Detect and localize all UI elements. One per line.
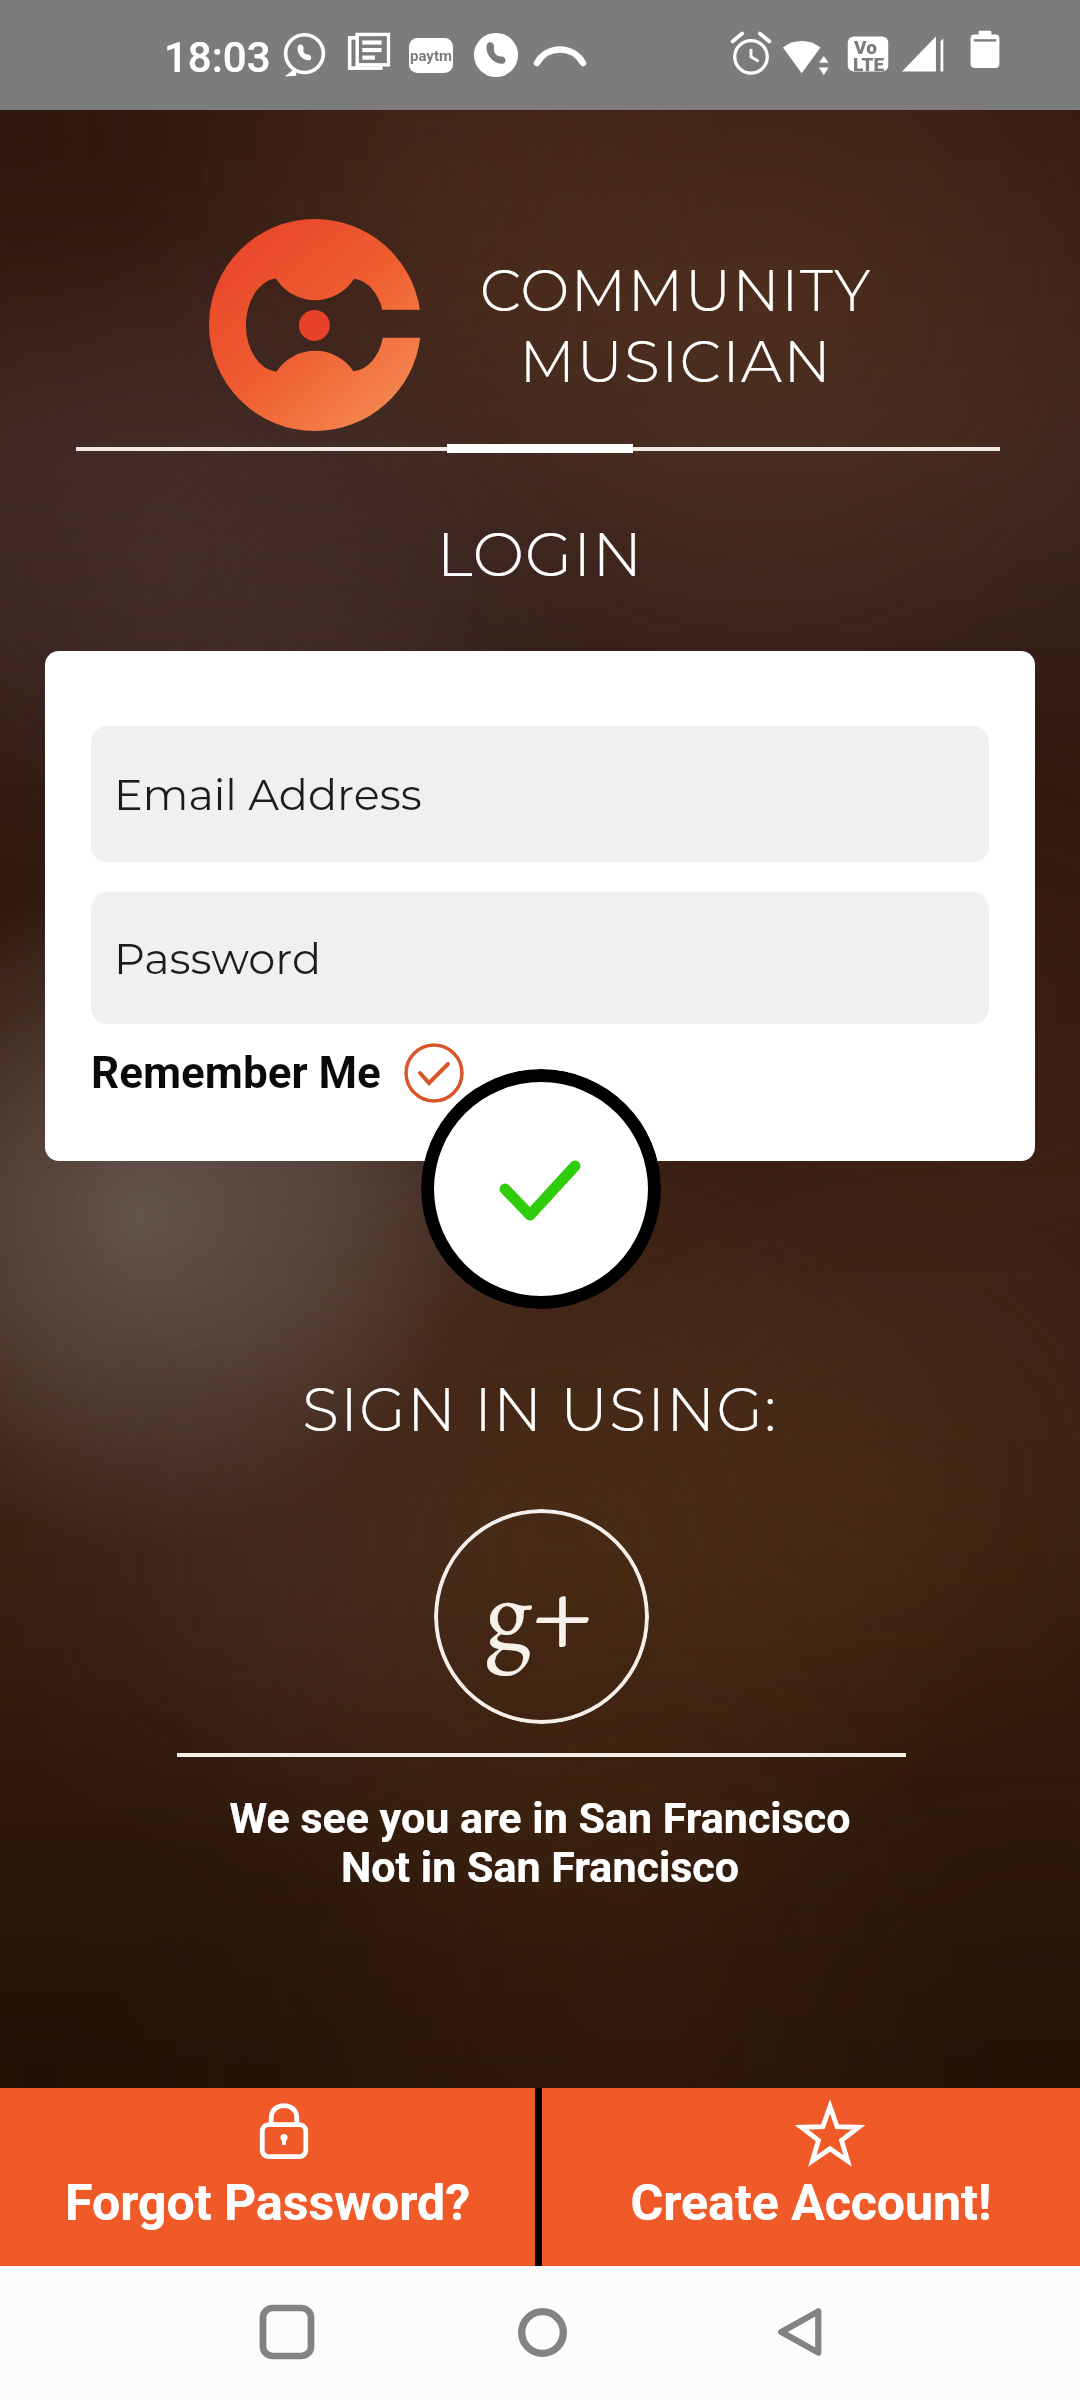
button[interactable]: Back	[753, 2284, 849, 2380]
staticText: We see you are in San Francisco Not in S…	[0, 1793, 1080, 1892]
staticText: Vo	[854, 36, 877, 58]
staticText: Create Account!	[542, 2174, 1080, 2233]
button[interactable]: Forgot Password?	[0, 2088, 535, 2266]
staticText: LTE	[853, 53, 885, 75]
button[interactable]: Remember Me	[91, 1036, 464, 1110]
other: Remember Me	[404, 1043, 464, 1103]
button[interactable]: Create Account!	[542, 2088, 1080, 2266]
button[interactable]: Sign in with Google Plus	[434, 1509, 649, 1724]
staticText: MUSICIAN	[476, 326, 876, 397]
button[interactable]: Password	[91, 892, 989, 1024]
button[interactable]: Email Address	[91, 726, 989, 862]
staticText: paytm	[406, 47, 456, 65]
staticText: SIGN IN USING:	[0, 1373, 1080, 1446]
staticText: g+	[486, 1541, 593, 1677]
button[interactable]: Recents	[239, 2284, 335, 2380]
staticText: Email Address	[114, 768, 422, 820]
staticText: Forgot Password?	[0, 2174, 535, 2233]
staticText: COMMUNITY	[476, 255, 876, 326]
staticText: Remember Me	[91, 1047, 381, 1099]
button[interactable]: Home	[494, 2284, 590, 2380]
button[interactable]: Sign in	[421, 1069, 661, 1309]
staticText: 18:03	[164, 33, 271, 82]
staticText: LOGIN	[0, 517, 1080, 591]
staticText: Password	[114, 932, 322, 984]
